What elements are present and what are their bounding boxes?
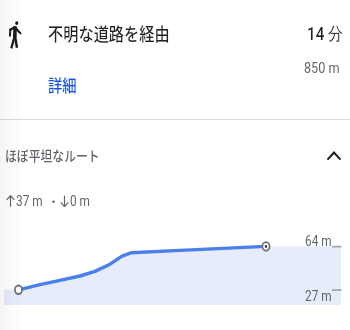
staticText: 不明な道路を経由 — [48, 20, 170, 46]
button[interactable]: 不明な道路を経由 — [0, 0, 350, 119]
staticText: 詳細 — [48, 72, 77, 97]
staticText: 64 m — [305, 233, 332, 249]
staticText: 850 m — [304, 59, 340, 77]
button[interactable]: 詳細 — [42, 70, 76, 95]
staticText: ほぼ平坦なルート — [5, 145, 100, 165]
staticText: 37 m — [16, 193, 43, 209]
button[interactable]: ほぼ平坦なルート — [0, 131, 350, 173]
staticText: 27 m — [305, 288, 332, 304]
staticText: 14 分 — [307, 23, 343, 46]
other: Collapse elevation details — [322, 144, 346, 168]
staticText: 0 m — [70, 193, 90, 209]
